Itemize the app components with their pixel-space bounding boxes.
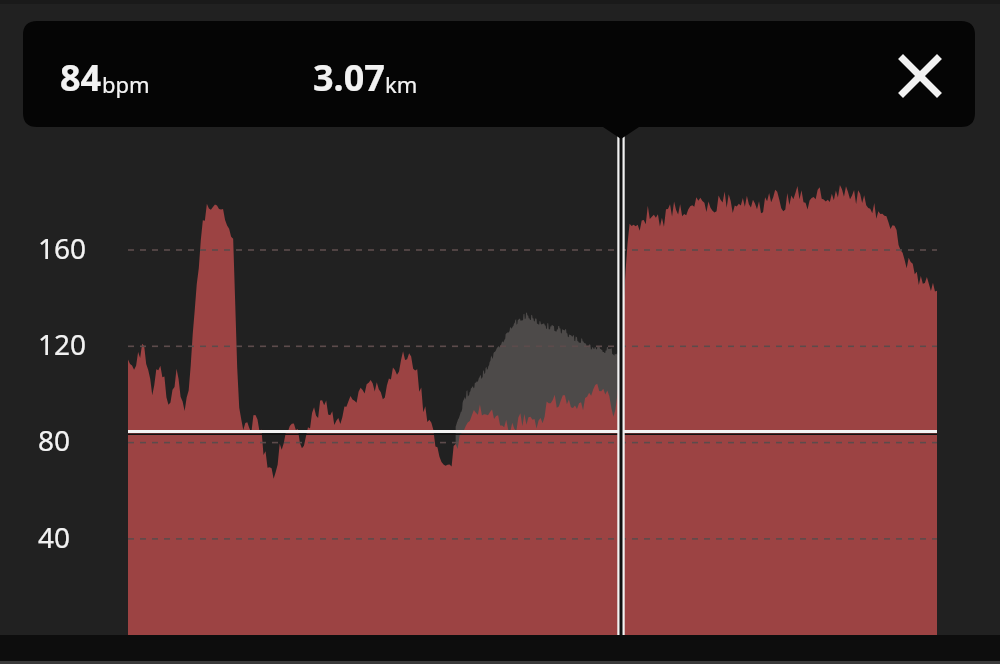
staticText: 84 — [60, 53, 102, 102]
staticText: 3.07 — [313, 53, 385, 102]
button[interactable]: Close — [886, 42, 954, 110]
staticText: 80 — [38, 421, 71, 459]
button[interactable]: Heart rate chart — [128, 140, 937, 635]
staticText: bpm — [102, 69, 150, 99]
staticText: km — [385, 69, 418, 99]
staticText: 40 — [38, 518, 71, 556]
staticText: 160 — [38, 229, 87, 267]
staticText: 120 — [38, 325, 87, 363]
